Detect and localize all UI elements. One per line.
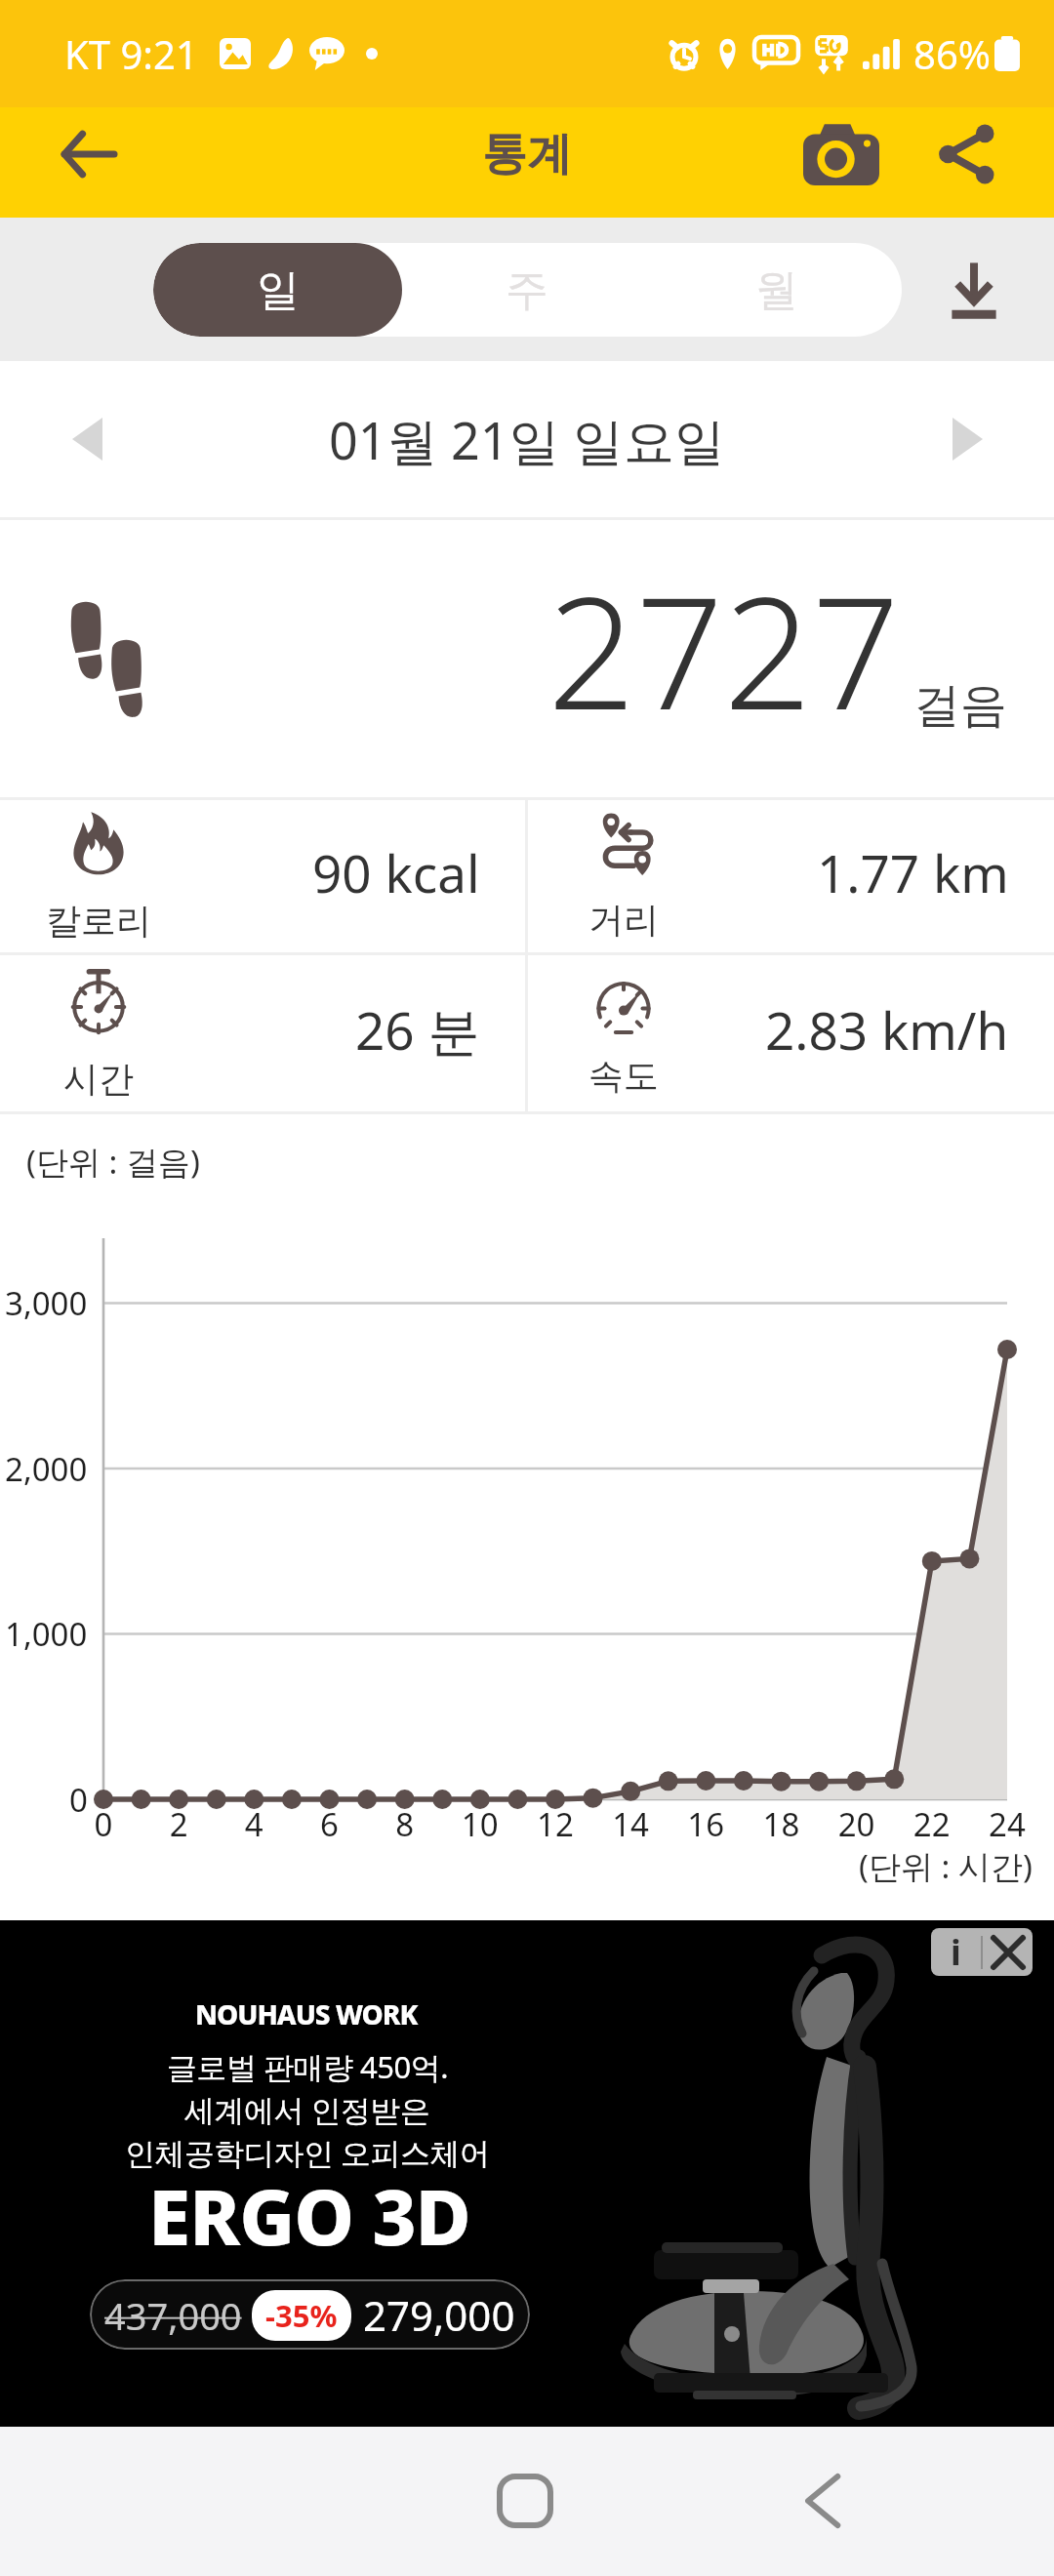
button[interactable]: Home [466,2442,584,2559]
staticText: 1.77 km [817,837,1009,907]
button[interactable]: 일 [153,243,402,337]
staticText: 속도 [588,1054,659,1098]
staticText: 2727 [547,544,900,754]
button[interactable]: Share [919,107,1013,201]
button[interactable]: Ad info [931,1928,981,1976]
staticText: (단위 : 시간) [859,1844,1033,1888]
staticText: 주 [506,263,548,317]
staticText: -35% [265,2295,338,2336]
staticText: ERGO 3D [148,2164,470,2262]
staticText: 279,000 [363,2287,515,2343]
button[interactable]: Previous day [48,400,126,478]
button[interactable]: 주 [402,243,652,337]
staticText: 437,000 [104,2290,242,2341]
button[interactable]: 월 [652,243,902,337]
staticText: (단위 : 걸음) [26,1140,200,1184]
button[interactable]: Back [43,109,133,199]
staticText: 일 [257,263,300,317]
staticText: 월 [755,263,798,317]
staticText: 거리 [588,898,659,942]
button[interactable]: Download [931,247,1017,333]
staticText: 01월 21일 일요일 [329,405,726,474]
staticText: 26 분 [355,994,480,1065]
staticText: 걸음 [913,676,1007,735]
button[interactable]: 속도 [528,955,1054,1111]
button[interactable]: Close ad [983,1928,1033,1976]
staticText: 세계에서 인정받은 [184,2089,430,2130]
button[interactable]: 시간 [0,955,525,1111]
button[interactable]: Next day [928,400,1006,478]
button[interactable]: 칼로리 [0,800,525,952]
staticText: NOUHAUS WORK [195,1995,418,2033]
staticText: 2.83 km/h [765,994,1009,1065]
button[interactable]: NOUHAUS WORK [0,1920,1054,2427]
staticText: 86% [913,27,991,80]
staticText: i [951,1928,961,1976]
staticText: 글로벌 판매량 450억. [167,2046,449,2087]
staticText: 시간 [63,1057,134,1101]
button[interactable]: Back [764,2442,881,2559]
staticText: 칼로리 [46,899,151,943]
button[interactable]: Camera [794,107,888,201]
button[interactable]: 거리 [528,800,1054,952]
staticText: 인체공학디자인 오피스체어 [125,2132,490,2173]
staticText: 통계 [482,126,572,182]
staticText: KT 9:21 [64,27,198,80]
staticText: 90 kcal [312,837,480,907]
